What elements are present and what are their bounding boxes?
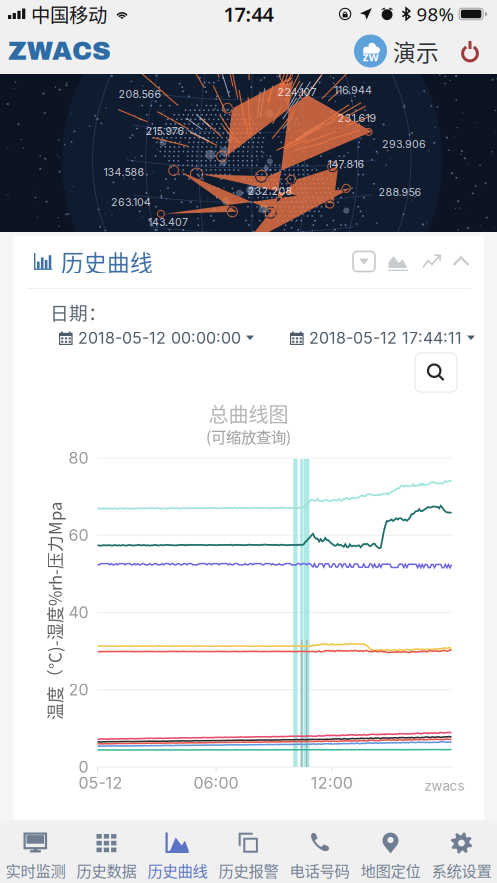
staticText: 143.407	[148, 215, 188, 228]
staticText: 231.619	[337, 111, 376, 124]
staticText: 147.816	[327, 157, 364, 170]
staticText: 电话号码	[289, 859, 349, 881]
staticText: 2018-05-12 17:44:11	[309, 328, 462, 348]
staticText: 日期：	[50, 298, 107, 325]
staticText: 演示	[393, 35, 439, 67]
staticText: 134.586	[103, 165, 144, 178]
button[interactable]: 地图定位	[355, 821, 426, 883]
staticText: (可缩放查询)	[206, 425, 291, 447]
staticText: 历史曲线	[61, 245, 153, 278]
staticText: 40	[68, 603, 88, 622]
button[interactable]: Collapse	[449, 249, 473, 273]
staticText: 116.944	[334, 83, 372, 96]
staticText: 215.976	[145, 124, 184, 137]
staticText: 263.104	[111, 195, 151, 208]
button[interactable]: 历史曲线	[142, 821, 213, 883]
staticText: 05-12	[78, 773, 122, 793]
button[interactable]: Power off	[457, 38, 483, 64]
button[interactable]: 2018-05-12 17:44:11	[290, 328, 475, 348]
staticText: 地图定位	[360, 859, 420, 881]
staticText: ZWACS	[8, 37, 111, 65]
staticText: 224.107	[277, 85, 316, 98]
button[interactable]: 历史数据	[71, 821, 142, 883]
staticText: 06:00	[194, 773, 239, 793]
staticText: 2018-05-12 00:00:00	[78, 328, 241, 348]
button[interactable]: Area chart	[385, 249, 411, 273]
button[interactable]: Search	[415, 353, 457, 392]
staticText: zwacs	[424, 778, 464, 794]
staticText: 0	[78, 757, 88, 777]
button[interactable]: zw	[354, 34, 439, 67]
button[interactable]: Line chart	[419, 249, 445, 273]
button[interactable]: 实时监测	[0, 821, 71, 883]
staticText: 80	[68, 448, 88, 468]
staticText: 208.566	[118, 87, 161, 100]
button[interactable]: 系统设置	[426, 821, 497, 883]
button[interactable]: Filter	[351, 249, 377, 273]
staticText: 232.208	[247, 184, 292, 197]
staticText: 历史报警	[218, 859, 278, 881]
staticText: 实时监测	[5, 859, 65, 881]
staticText: 60	[68, 526, 88, 545]
staticText: 17:44	[223, 1, 273, 27]
staticText: 系统设置	[431, 859, 491, 881]
staticText: 历史数据	[76, 859, 136, 881]
staticText: 总曲线图	[208, 399, 288, 428]
staticText: 98%	[417, 2, 455, 26]
button[interactable]: 电话号码	[284, 821, 355, 883]
staticText: zw	[362, 48, 378, 64]
staticText: 温度（°C)-湿度%rh-压力Mpa	[0, 599, 163, 623]
staticText: 288.956	[378, 185, 421, 198]
staticText: 12:00	[311, 773, 353, 793]
staticText: 中国移动	[31, 0, 107, 28]
staticText: 历史曲线	[147, 859, 207, 881]
button[interactable]: 2018-05-12 00:00:00	[59, 328, 254, 348]
staticText: 293.906	[382, 137, 426, 150]
button[interactable]: 历史报警	[213, 821, 284, 883]
staticText: 20	[68, 680, 88, 699]
